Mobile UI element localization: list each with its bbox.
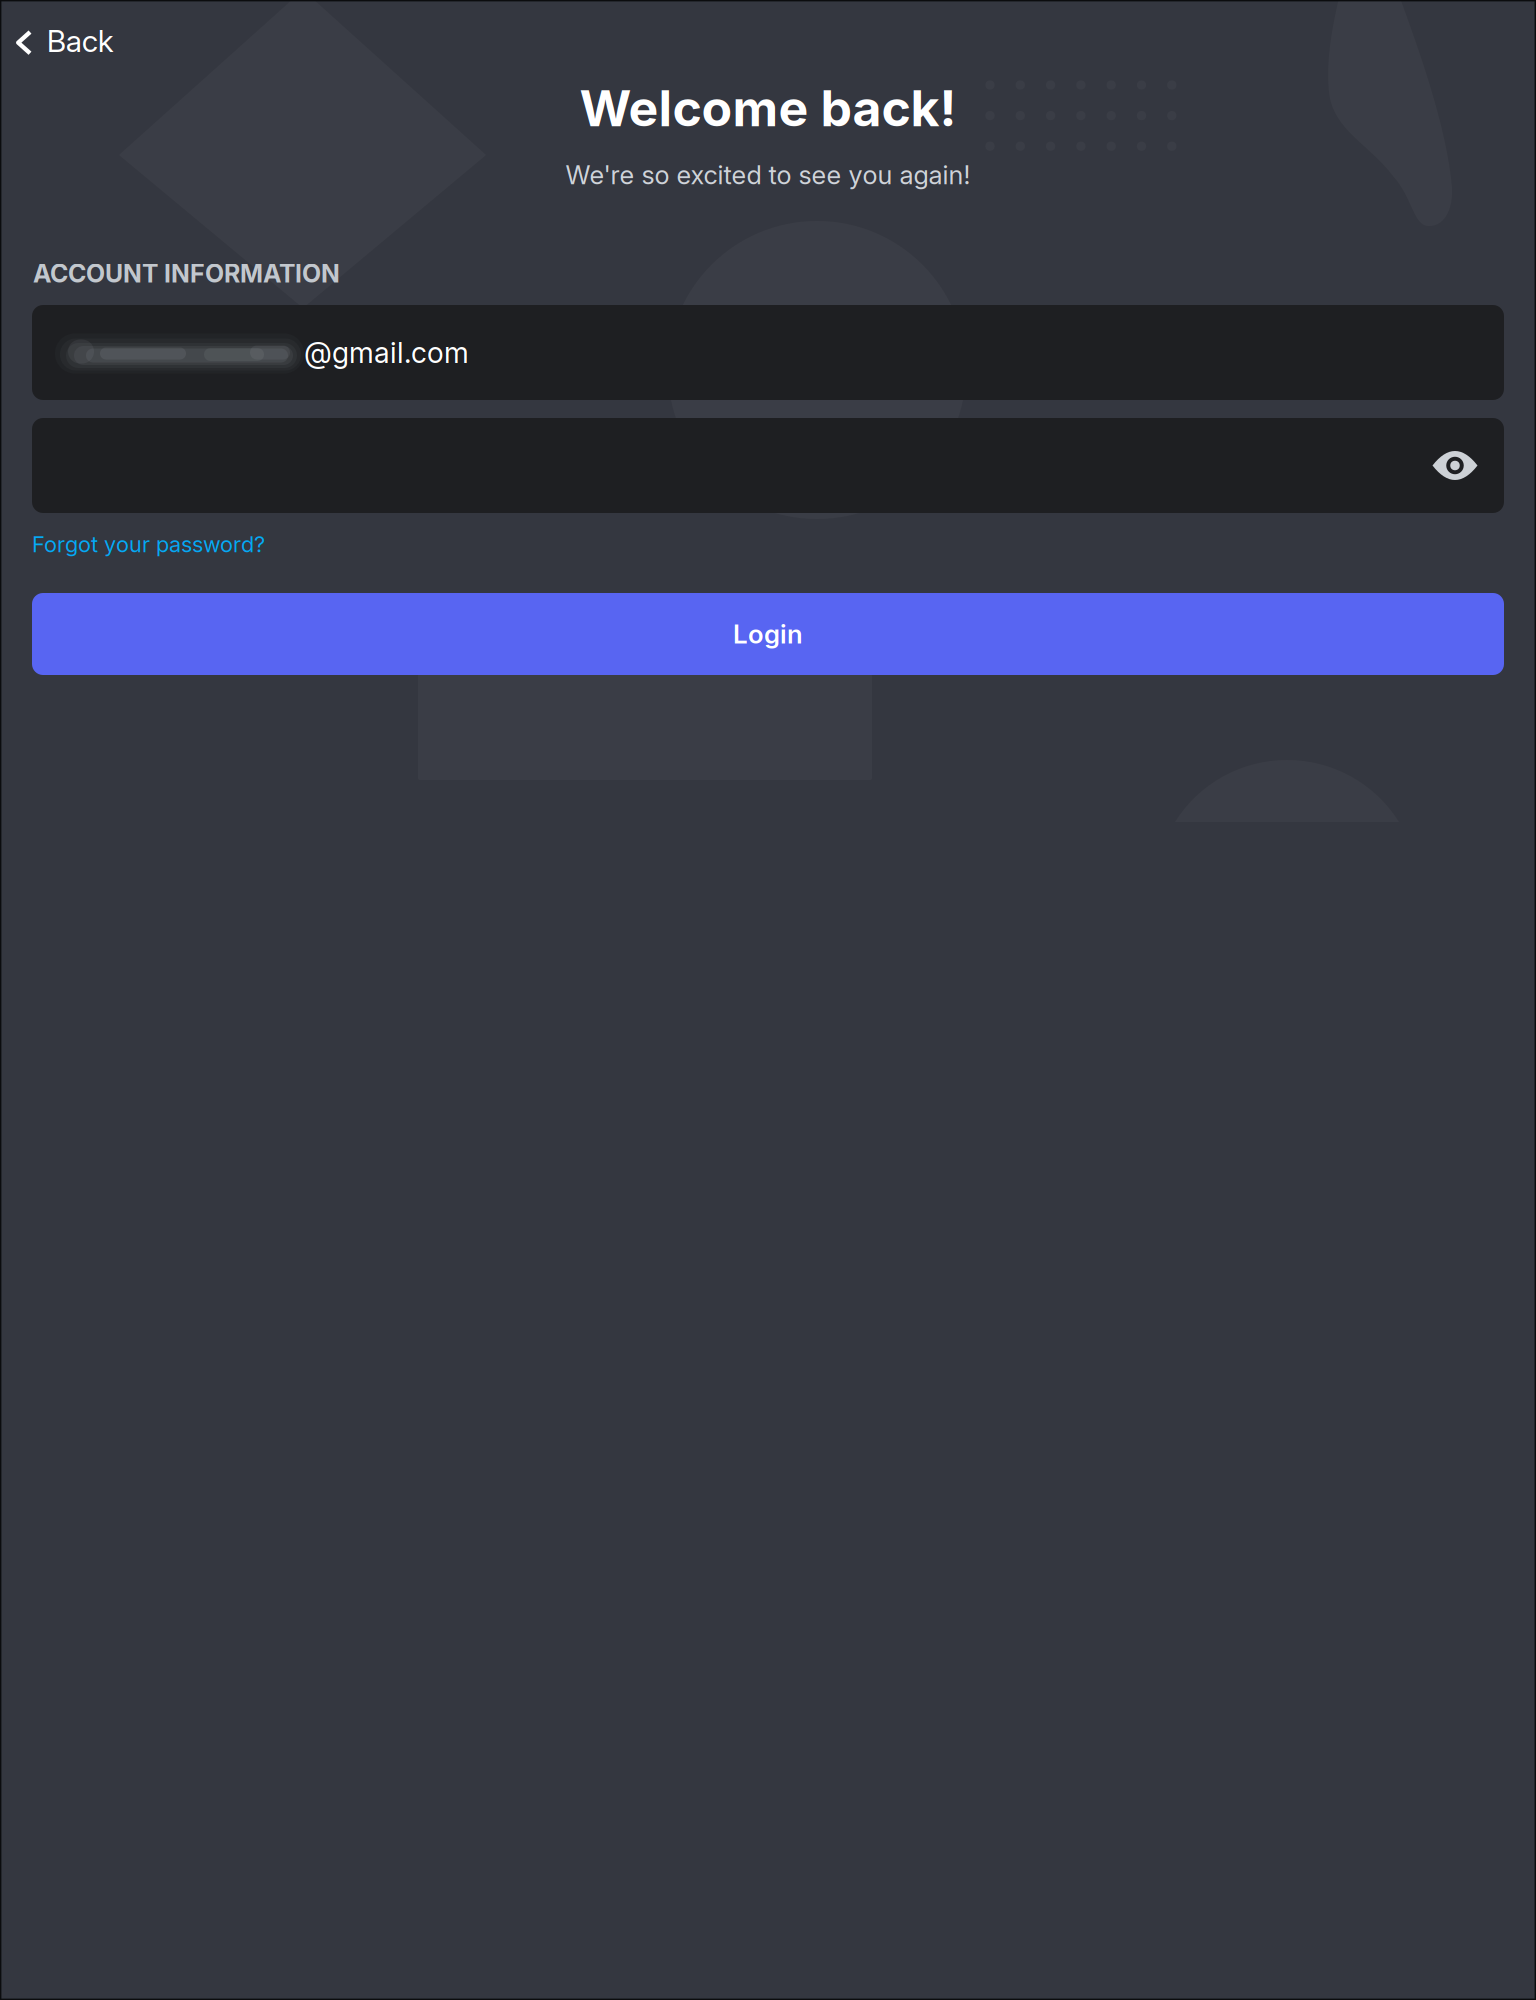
- button[interactable]: Forgot your password?: [0, 519, 285, 569]
- staticText: Back: [47, 23, 114, 59]
- button[interactable]: Back: [0, 9, 134, 73]
- staticText: Login: [733, 618, 803, 650]
- staticText: Welcome back!: [579, 78, 956, 138]
- staticText: Forgot your password?: [32, 531, 265, 557]
- staticText: @gmail.com: [304, 335, 469, 370]
- staticText: We're so excited to see you again!: [565, 159, 970, 190]
- button[interactable]: Login: [32, 593, 1504, 675]
- staticText: ACCOUNT INFORMATION: [33, 258, 340, 289]
- button[interactable]: Show password: [1420, 431, 1490, 500]
